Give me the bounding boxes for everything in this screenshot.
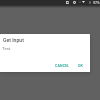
staticText: OK [78,64,84,68]
other: Location [73,1,76,4]
other: Battery [89,1,91,4]
other: Screenshot [66,1,69,4]
staticText: Get Input [3,37,24,43]
other: Wi-Fi [82,1,85,3]
staticText: CANCEL [55,64,70,68]
staticText: Test [2,46,11,51]
button[interactable]: CANCEL [52,62,73,70]
button[interactable]: OK [75,62,87,70]
staticText: 97% [93,1,100,5]
